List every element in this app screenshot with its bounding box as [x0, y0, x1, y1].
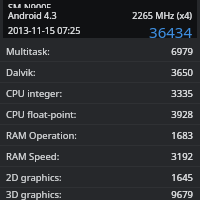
button[interactable]: CPU integer: [0, 83, 200, 103]
staticText: Dalvik: [6, 66, 36, 79]
staticText: RAM Speed: [6, 150, 60, 163]
staticText: CPU integer: [6, 87, 62, 100]
staticText: SM-N9005 [8, 1, 52, 8]
staticText: RAM Operation: [6, 129, 77, 142]
staticText: 9679 [171, 188, 193, 200]
staticText: 3650 [171, 66, 193, 79]
button[interactable]: RAM Operation: [0, 125, 200, 145]
staticText: 2D graphics: [6, 171, 62, 184]
staticText: 1683 [171, 129, 193, 142]
button[interactable]: 2D graphics: [0, 167, 200, 187]
staticText: 6979 [171, 45, 193, 58]
staticText: Android 4.3 [8, 9, 57, 21]
staticText: 3928 [171, 108, 193, 121]
button[interactable]: Multitask: [0, 41, 200, 61]
button[interactable]: CPU float-point: [0, 104, 200, 124]
staticText: 1645 [171, 171, 193, 184]
button[interactable]: Dalvik: [0, 62, 200, 82]
staticText: 36434 [149, 22, 192, 38]
staticText: Multitask: [6, 45, 50, 58]
staticText: CPU float-point: [6, 108, 77, 121]
staticText: 3192 [171, 150, 193, 163]
staticText: 2265 MHz (x4) [132, 9, 192, 21]
staticText: 3335 [171, 87, 193, 100]
button[interactable]: RAM Speed: [0, 146, 200, 166]
staticText: 3D graphics: [6, 188, 62, 200]
button[interactable]: 3D graphics: [0, 188, 200, 200]
button[interactable]: SM-N9005 [3, 0, 197, 38]
staticText: 2013-11-15 07:25 [8, 24, 81, 36]
